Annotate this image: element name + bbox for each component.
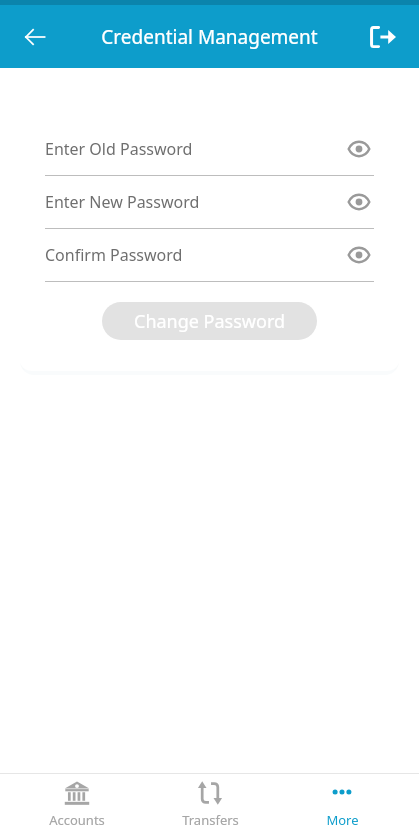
staticText: Change Password [134,309,286,334]
button[interactable]: Toggle password visibility [344,240,374,270]
button[interactable]: Transfers [155,773,265,836]
staticText: Enter New Password [45,191,344,213]
button[interactable]: Enter New Password [19,176,400,229]
button[interactable]: Accounts [22,773,132,836]
button[interactable]: Log out [361,15,405,59]
button[interactable]: Back [14,16,56,58]
button[interactable]: Change Password [102,302,317,340]
staticText: Confirm Password [45,244,344,266]
staticText: More [326,811,359,829]
button[interactable]: More [287,773,397,836]
staticText: Enter Old Password [45,138,344,160]
button[interactable]: Confirm Password [19,229,400,282]
button[interactable]: Enter Old Password [19,123,400,176]
button[interactable]: Toggle password visibility [344,134,374,164]
staticText: Transfers [182,811,239,829]
staticText: Credential Management [101,24,318,50]
staticText: Accounts [49,811,105,829]
button[interactable]: Toggle password visibility [344,187,374,217]
